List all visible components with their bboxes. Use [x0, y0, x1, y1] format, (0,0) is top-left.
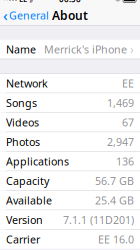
staticText: Videos	[6, 115, 39, 129]
staticText: Version	[6, 213, 43, 227]
staticText: EE 16.0	[98, 232, 134, 246]
staticText: 25.4 GB	[95, 193, 134, 207]
button[interactable]: Name	[0, 40, 140, 59]
staticText: EE	[19, 0, 27, 4]
staticText: Songs	[6, 96, 37, 110]
staticText: ‹	[3, 5, 8, 25]
staticText: 1,469	[107, 96, 134, 110]
staticText: EE	[122, 76, 134, 90]
staticText: Applications	[6, 154, 69, 168]
staticText: About	[52, 7, 88, 23]
staticText: 67	[122, 115, 134, 129]
staticText: Photos	[6, 135, 40, 149]
staticText: General	[9, 8, 49, 22]
staticText: Capacity	[6, 174, 49, 188]
staticText: Carrier	[6, 232, 40, 246]
staticText: Merrick's iPhone	[44, 42, 127, 56]
staticText: ◗	[29, 0, 33, 4]
button[interactable]: ‹	[0, 5, 52, 25]
staticText: ›	[130, 41, 134, 57]
staticText: 56.7 GB	[95, 174, 134, 188]
staticText: Network	[6, 76, 48, 90]
staticText: 06:56	[59, 0, 81, 4]
staticText: 7.1.1 (11D201)	[63, 213, 134, 227]
staticText: 136	[116, 154, 134, 168]
staticText: Available	[6, 193, 52, 207]
staticText: Name	[6, 42, 36, 56]
staticText: 2,947	[107, 135, 134, 149]
staticText: ✻	[115, 0, 121, 3]
